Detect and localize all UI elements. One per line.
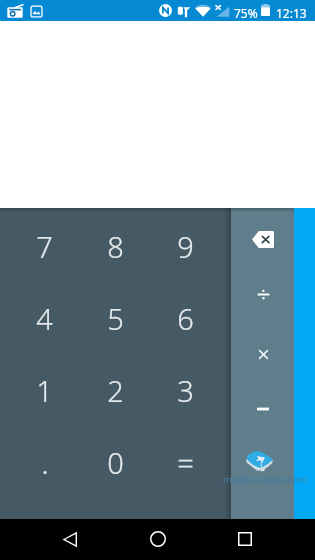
button[interactable]: .	[9, 426, 80, 498]
staticText: 3	[177, 371, 194, 410]
button[interactable]: Home	[136, 519, 180, 559]
button[interactable]: Minus	[232, 381, 294, 437]
button[interactable]: Plus	[232, 437, 294, 493]
button[interactable]: 0	[80, 426, 151, 498]
button[interactable]: Back	[48, 519, 92, 559]
button[interactable]: Recents	[223, 519, 267, 559]
staticText: 9	[177, 227, 194, 266]
button[interactable]: 3	[150, 354, 221, 426]
button[interactable]: 9	[150, 210, 221, 282]
staticText: 8	[107, 227, 124, 266]
staticText: 6	[177, 299, 194, 338]
staticText: 12:13	[276, 5, 307, 21]
staticText: 0	[107, 443, 124, 482]
button[interactable]: 7	[9, 210, 80, 282]
button[interactable]: 6	[150, 282, 221, 354]
staticText: 75%	[234, 5, 258, 21]
button[interactable]: 2	[80, 354, 151, 426]
staticText: 7	[36, 227, 53, 266]
staticText: =	[177, 443, 194, 482]
staticText: mobile-review.com	[223, 473, 307, 486]
button[interactable]: Backspace	[232, 211, 294, 267]
staticText: 5	[107, 299, 124, 338]
button[interactable]: 5	[80, 282, 151, 354]
button[interactable]: Divide	[232, 266, 294, 322]
button[interactable]: Multiply	[232, 326, 294, 382]
staticText: 2	[107, 371, 124, 410]
button[interactable]: 4	[9, 282, 80, 354]
button[interactable]: 1	[9, 354, 80, 426]
staticText: 4	[36, 299, 53, 338]
button[interactable]: =	[150, 426, 221, 498]
staticText: 1	[36, 371, 53, 410]
staticText: .	[41, 443, 49, 482]
button[interactable]: 8	[80, 210, 151, 282]
